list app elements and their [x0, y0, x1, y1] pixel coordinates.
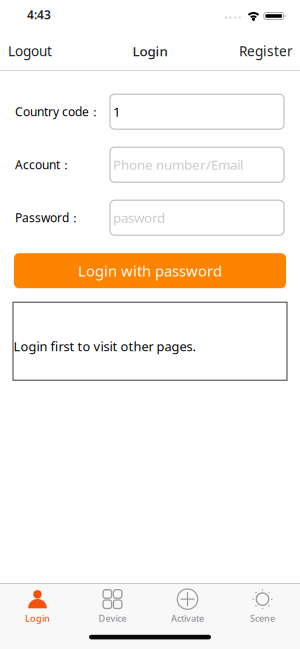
- staticText: Password：: [15, 209, 81, 226]
- staticText: Login: [132, 42, 167, 60]
- staticText: Activate: [171, 612, 204, 624]
- staticText: Account：: [15, 156, 72, 173]
- staticText: Device: [98, 612, 126, 624]
- staticText: 1: [113, 103, 121, 121]
- staticText: Login: [25, 612, 50, 624]
- button[interactable]: 1: [110, 94, 284, 129]
- staticText: Login first to visit other pages.: [13, 337, 195, 355]
- button[interactable]: Scene: [225, 587, 300, 627]
- staticText: Phone number/Email: [113, 156, 243, 174]
- staticText: Scene: [250, 612, 275, 624]
- staticText: 4:43: [27, 6, 51, 23]
- staticText: Country code：: [15, 103, 101, 120]
- staticText: Login with password: [78, 261, 222, 281]
- button[interactable]: Phone number/Email: [110, 147, 284, 182]
- button[interactable]: Device: [75, 587, 150, 627]
- staticText: Logout: [8, 42, 52, 60]
- button[interactable]: Login: [0, 587, 75, 627]
- staticText: pasword: [113, 209, 165, 227]
- button[interactable]: pasword: [110, 200, 284, 235]
- button[interactable]: Activate: [150, 587, 225, 627]
- staticText: Register: [239, 42, 293, 60]
- button[interactable]: Login with password: [14, 253, 286, 288]
- button[interactable]: Register: [239, 42, 293, 60]
- button[interactable]: Logout: [8, 42, 52, 60]
